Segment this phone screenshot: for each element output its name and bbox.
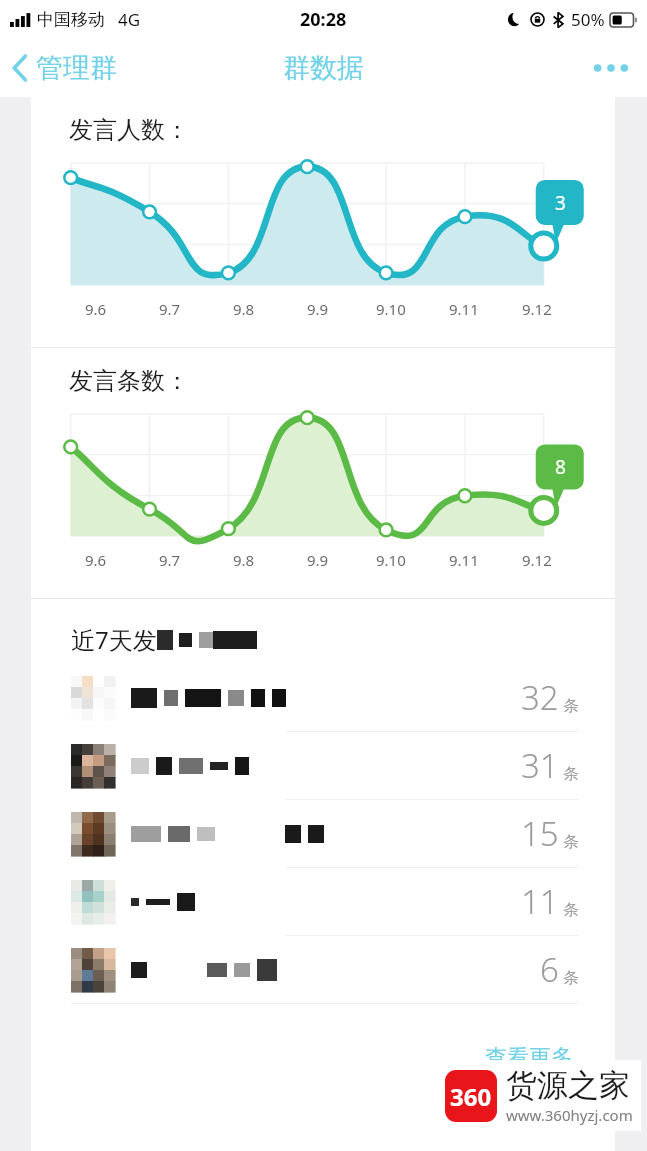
staticText: 货源之家 xyxy=(506,1066,630,1105)
staticText: 9.11 xyxy=(449,299,479,319)
staticText: 管理群 xyxy=(36,51,117,85)
staticText: 50% xyxy=(571,8,605,31)
button[interactable]: More options xyxy=(575,48,647,88)
staticText: 发言条数： xyxy=(69,366,189,396)
staticText: 9.8 xyxy=(233,299,255,319)
staticText: 9.6 xyxy=(85,550,107,570)
staticText: 条 xyxy=(563,764,579,784)
staticText: 9.7 xyxy=(159,550,181,570)
staticText: 9.10 xyxy=(376,299,406,319)
button[interactable]: 6 xyxy=(31,936,615,1004)
staticText: 360 xyxy=(450,1080,492,1113)
staticText: 11 xyxy=(521,879,559,924)
staticText: 群数据 xyxy=(283,51,364,85)
staticText: 发言人数： xyxy=(69,115,189,145)
staticText: 9.9 xyxy=(307,550,329,570)
staticText: 15 xyxy=(521,811,559,856)
staticText: 6 xyxy=(540,947,559,992)
staticText: 3 xyxy=(555,190,566,216)
staticText: 条 xyxy=(563,696,579,716)
staticText: 条 xyxy=(563,900,579,920)
button[interactable]: 32 xyxy=(31,664,615,732)
staticText: 4G xyxy=(118,8,141,31)
staticText: 20:28 xyxy=(300,7,347,32)
staticText: 条 xyxy=(563,968,579,988)
staticText: 9.10 xyxy=(376,550,406,570)
staticText: 32 xyxy=(521,675,559,720)
staticText: 31 xyxy=(521,743,559,788)
staticText: 9.8 xyxy=(233,550,255,570)
staticText: 条 xyxy=(563,832,579,852)
button[interactable]: 查看更多 xyxy=(479,1038,579,1078)
staticText: 9.9 xyxy=(307,299,329,319)
staticText: 9.6 xyxy=(85,299,107,319)
staticText: 9.12 xyxy=(522,299,552,319)
staticText: 中国移动 xyxy=(37,9,105,30)
button[interactable]: 管理群 xyxy=(0,43,131,93)
staticText: 9.11 xyxy=(449,550,479,570)
staticText: www.360hyzj.com xyxy=(506,1105,633,1125)
button[interactable]: 11 xyxy=(31,868,615,936)
staticText: 近7天发 xyxy=(71,623,157,656)
staticText: 9.12 xyxy=(522,550,552,570)
button[interactable]: 15 xyxy=(31,800,615,868)
button[interactable]: 31 xyxy=(31,732,615,800)
staticText: 查看更多 xyxy=(485,1044,573,1072)
staticText: 9.7 xyxy=(159,299,181,319)
staticText: 8 xyxy=(555,454,566,480)
